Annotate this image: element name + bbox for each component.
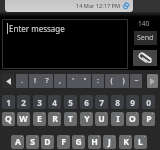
button[interactable]: . xyxy=(16,74,28,88)
staticText: 4 xyxy=(52,97,57,108)
button[interactable] xyxy=(2,74,14,88)
staticText: . xyxy=(21,76,23,86)
staticText: 7 xyxy=(99,97,104,108)
staticText: F xyxy=(61,136,66,148)
staticText: U xyxy=(98,113,105,125)
button[interactable]: Attach file xyxy=(133,50,157,66)
button[interactable]: 3 xyxy=(33,95,46,109)
button[interactable]: J xyxy=(103,135,116,149)
staticText: 140 xyxy=(138,19,150,28)
button[interactable]: G xyxy=(72,135,85,149)
button[interactable]: F xyxy=(57,135,70,149)
button[interactable]: 0 xyxy=(142,95,155,109)
button[interactable]: Q xyxy=(2,112,15,126)
staticText: 2 xyxy=(21,97,26,108)
staticText: W xyxy=(19,113,28,125)
staticText: I xyxy=(116,113,120,125)
staticText: L xyxy=(138,136,143,148)
staticText: S xyxy=(30,136,35,148)
button[interactable]: 2 xyxy=(17,95,30,109)
staticText: R xyxy=(52,113,58,125)
button[interactable]: 5 xyxy=(64,95,77,109)
button[interactable]: W xyxy=(17,112,30,126)
staticText: H xyxy=(91,136,98,148)
button[interactable]: S xyxy=(26,135,39,149)
button[interactable]: ( xyxy=(105,74,117,88)
button[interactable]: U xyxy=(95,112,108,126)
button[interactable]: 1 xyxy=(2,95,15,109)
staticText: K xyxy=(123,136,129,148)
staticText: 6 xyxy=(84,97,89,108)
button[interactable]: O xyxy=(126,112,139,126)
button[interactable]: P xyxy=(142,112,155,126)
button[interactable]: ) xyxy=(117,74,129,88)
button[interactable]: R xyxy=(48,112,61,126)
staticText: ? xyxy=(45,76,49,86)
staticText: , xyxy=(59,76,61,86)
button[interactable]: 9 xyxy=(126,95,139,109)
button[interactable]: 8 xyxy=(111,95,124,109)
button[interactable]: H xyxy=(88,135,101,149)
button[interactable]: L xyxy=(134,135,147,149)
staticText: " xyxy=(83,76,87,86)
staticText: ( xyxy=(110,76,113,86)
staticText: 8 xyxy=(115,97,120,108)
button[interactable]: Y xyxy=(80,112,93,126)
staticText: P xyxy=(146,113,152,125)
button[interactable]: ! xyxy=(29,74,41,88)
staticText: ~ xyxy=(134,76,139,86)
button[interactable]: 4 xyxy=(48,95,61,109)
staticText: 14 Mar 12:17 PM xyxy=(76,2,121,10)
button[interactable]: 6 xyxy=(80,95,93,109)
staticText: J xyxy=(108,136,111,148)
staticText: ) xyxy=(122,76,125,86)
staticText: D xyxy=(44,136,51,148)
staticText: 1 xyxy=(6,97,11,108)
staticText: G xyxy=(75,136,82,148)
button[interactable] xyxy=(147,74,158,88)
button[interactable]: ? xyxy=(41,74,53,88)
button[interactable]: Send xyxy=(134,31,157,45)
button[interactable]: : xyxy=(92,74,104,88)
staticText: Q xyxy=(5,113,12,125)
staticText: 9 xyxy=(130,97,135,108)
button[interactable]: " xyxy=(79,74,91,88)
button[interactable]: I xyxy=(111,112,124,126)
staticText: Send xyxy=(137,33,154,43)
staticText: E xyxy=(37,113,42,125)
staticText: ! xyxy=(34,76,36,86)
staticText: ' xyxy=(72,76,74,86)
staticText: : xyxy=(97,76,99,86)
button[interactable]: ~ xyxy=(130,74,142,88)
button[interactable]: E xyxy=(33,112,46,126)
button[interactable]: T xyxy=(64,112,77,126)
staticText: T xyxy=(68,113,73,125)
staticText: 5 xyxy=(68,97,73,108)
staticText: A xyxy=(15,136,21,148)
button[interactable]: Enter message xyxy=(2,19,128,69)
button[interactable]: K xyxy=(119,135,132,149)
staticText: 0 xyxy=(146,97,151,108)
button[interactable]: , xyxy=(54,74,66,88)
staticText: Enter message xyxy=(9,23,65,34)
staticText: Y xyxy=(84,113,90,125)
staticText: O xyxy=(129,113,136,125)
staticText: 3 xyxy=(37,97,42,108)
button[interactable]: ' xyxy=(67,74,79,88)
button[interactable]: 7 xyxy=(95,95,108,109)
button[interactable]: A xyxy=(11,135,24,149)
button[interactable]: D xyxy=(41,135,54,149)
